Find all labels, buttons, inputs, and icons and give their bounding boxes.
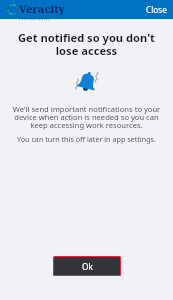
staticText: T E C H N O L O G I E S [19, 17, 50, 20]
staticText: Get notified so you don't lose access [8, 30, 165, 59]
staticText: We'll send important notifications to yo… [6, 104, 167, 131]
button[interactable]: Close [138, 1, 173, 19]
staticText: Ok [82, 261, 93, 272]
staticText: You can turn this off later in app setti… [6, 134, 167, 144]
staticText: Veracity [19, 1, 65, 16]
button[interactable]: Ok [54, 257, 120, 275]
staticText: Close [146, 4, 167, 15]
